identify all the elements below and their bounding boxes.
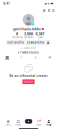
- button[interactable]: Add friends: [42, 8, 47, 12]
- button[interactable]: Create: [23, 119, 34, 126]
- staticText: Inbox: [36, 124, 41, 126]
- button[interactable]: TikTok Studio: [18, 51, 39, 54]
- staticText: 3,908: [24, 32, 33, 36]
- staticText: Profile: [46, 124, 51, 126]
- staticText: Share profile: [27, 41, 44, 44]
- button[interactable]: 6,387: [34, 32, 46, 38]
- staticText: Home: [6, 124, 11, 126]
- button[interactable]: 8: [11, 32, 23, 38]
- button[interactable]: Private: [28, 55, 43, 60]
- button[interactable]: Bookmarks: [47, 8, 51, 12]
- button[interactable]: 3,908: [23, 32, 34, 38]
- staticText: Create: [23, 80, 33, 83]
- button[interactable]: Friends: [13, 119, 23, 126]
- button[interactable]: Profile: [44, 119, 54, 126]
- button[interactable]: Edit profile: [6, 40, 25, 45]
- staticText: Edit profile: [8, 41, 24, 44]
- button[interactable]: Videos: [0, 55, 14, 60]
- button[interactable]: Inbox: [34, 119, 44, 126]
- staticText: + Add bio: [21, 46, 36, 49]
- button[interactable]: Reposts: [14, 55, 28, 60]
- staticText: Following: [12, 36, 22, 39]
- staticText: Followers: [23, 36, 33, 39]
- staticText: Be an influential creator: [9, 74, 47, 78]
- staticText: @michaela.tebbs: [13, 27, 41, 31]
- button[interactable]: Menu: [51, 9, 55, 12]
- button[interactable]: Profile photo: [22, 14, 35, 26]
- button[interactable]: Share profile: [26, 40, 45, 45]
- button[interactable]: Home: [3, 119, 13, 126]
- button[interactable]: Liked: [43, 55, 57, 60]
- button[interactable]: + Add bio: [21, 46, 36, 49]
- staticText: 8: [16, 32, 18, 36]
- button[interactable]: Find friends: [46, 40, 51, 45]
- staticText: 6,387: [36, 32, 45, 36]
- staticText: TikTok Studio: [20, 51, 39, 54]
- staticText: Likes: [38, 36, 43, 39]
- staticText: Friends: [15, 124, 21, 126]
- staticText: 9:41: [3, 2, 9, 5]
- button[interactable]: Create: [22, 79, 35, 84]
